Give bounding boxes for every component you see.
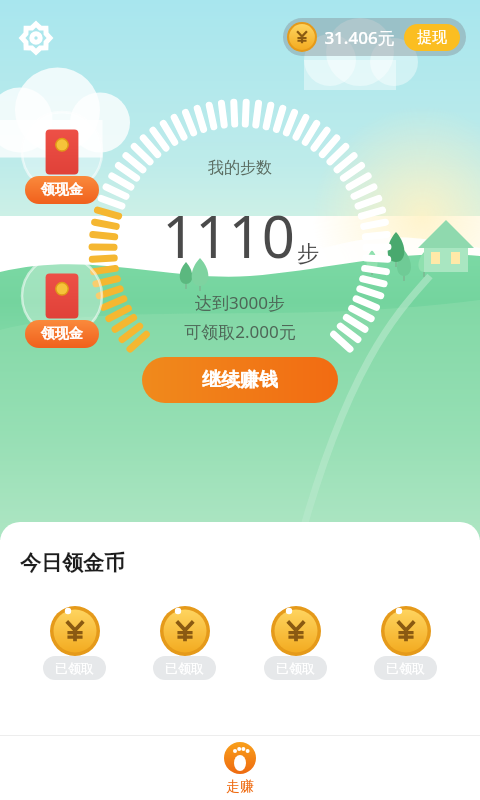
button[interactable]: 已领取 [39, 606, 110, 680]
button[interactable]: 提现 [404, 24, 460, 51]
button[interactable]: 领现金 [25, 320, 99, 348]
staticText: 可领取2.000元 [184, 320, 296, 343]
button[interactable]: 领现金 [25, 176, 99, 204]
staticText: 领现金 [41, 325, 83, 343]
button[interactable]: 已领取 [370, 606, 441, 680]
staticText: 1110 [162, 196, 295, 275]
staticText: 领现金 [41, 181, 83, 199]
staticText: 走赚 [226, 778, 254, 796]
staticText: 已领取 [55, 660, 94, 676]
staticText: 达到3000步 [195, 291, 285, 314]
staticText: 31.406元 [324, 26, 395, 49]
staticText: 今日领金币 [20, 550, 125, 576]
staticText: 继续赚钱 [202, 368, 278, 392]
button[interactable]: 已领取 [149, 606, 220, 680]
button[interactable]: Settings [16, 18, 56, 58]
button[interactable]: 走赚 [195, 736, 285, 796]
button[interactable]: 继续赚钱 [142, 357, 338, 403]
staticText: 我的步数 [208, 158, 272, 178]
staticText: 已领取 [386, 660, 425, 676]
staticText: 步 [297, 240, 319, 268]
staticText: 提现 [417, 28, 447, 47]
staticText: 已领取 [276, 660, 315, 676]
button[interactable]: 31.406元 [283, 18, 466, 56]
staticText: 已领取 [165, 660, 204, 676]
button[interactable]: 已领取 [260, 606, 331, 680]
